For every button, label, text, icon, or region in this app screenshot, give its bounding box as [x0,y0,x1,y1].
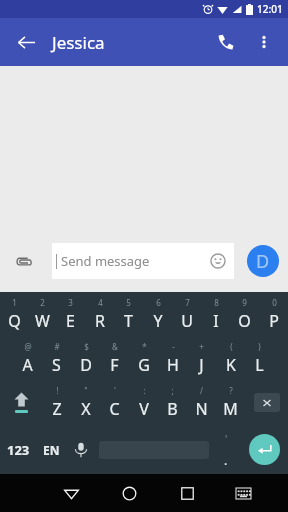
button[interactable]: Call [206,22,246,62]
staticText: * [142,341,147,352]
button[interactable]: 7 [172,292,201,337]
staticText: N [195,398,208,420]
staticText: L [255,354,264,376]
staticText: 9 [242,297,247,308]
staticText: H [167,354,179,376]
button[interactable]: Voice input [66,425,96,474]
button[interactable]: # [42,337,71,380]
staticText: 8 [214,297,219,308]
staticText: ( [230,341,233,352]
staticText: D [80,354,92,376]
button[interactable]: Home [100,474,158,512]
button[interactable]: Emoji [205,248,231,274]
staticText: : [143,385,146,396]
button[interactable]: 123 [0,425,36,474]
staticText: O [238,310,251,332]
staticText: 0 [272,297,277,308]
button[interactable]: 5 [114,292,143,337]
staticText: T [124,310,133,332]
button[interactable]: Shift [0,380,42,425]
staticText: ; [171,385,174,396]
staticText: / [200,385,203,396]
button[interactable]: * [129,337,158,380]
button[interactable]: ' [211,425,240,474]
staticText: G [138,354,150,376]
staticText: E [66,310,75,332]
button[interactable]: 0 [259,292,288,337]
staticText: . [224,452,228,468]
button[interactable]: - [158,337,187,380]
button[interactable]: Attach [10,248,36,274]
staticText: 2 [40,297,45,308]
button[interactable]: Recents [158,474,216,512]
staticText: Send message [61,252,150,270]
staticText: ' [114,385,116,396]
button[interactable]: Switch keyboard [216,474,271,512]
staticText: - [172,341,175,352]
staticText: ' [225,432,228,446]
button[interactable]: ' [100,380,129,425]
button[interactable]: Send message [52,243,234,279]
staticText: I [213,310,219,332]
button[interactable]: ; [158,380,187,425]
staticText: 7 [185,297,190,308]
button[interactable]: 8 [201,292,230,337]
button[interactable]: EN [36,425,66,474]
button[interactable]: ? [216,380,245,425]
staticText: J [199,354,204,376]
button[interactable]: Enter [240,425,288,474]
staticText: 1 [12,297,17,308]
staticText: ! [56,385,59,396]
staticText: A [22,354,33,376]
button[interactable]: Back [42,474,100,512]
button[interactable]: 2 [28,292,56,337]
button[interactable]: 9 [230,292,259,337]
button[interactable]: @ [13,337,42,380]
staticText: Jessica [52,31,105,54]
staticText: F [110,354,119,376]
button[interactable]: More options [246,24,282,60]
button[interactable]: 6 [143,292,172,337]
staticText: ? [229,385,233,396]
staticText: S [52,354,61,376]
button[interactable]: Back [6,22,46,62]
staticText: B [167,398,178,420]
button[interactable]: + [187,337,216,380]
button[interactable]: 4 [85,292,114,337]
staticText: @ [24,341,32,352]
staticText: 123 [7,441,30,459]
button[interactable]: Send [247,245,279,277]
button[interactable]: ( [216,337,245,380]
button[interactable]: / [187,380,216,425]
button[interactable]: ) [245,337,274,380]
button[interactable]: " [71,380,100,425]
staticText: 12:01 [257,2,283,16]
staticText: M [223,398,238,420]
button[interactable]: ! [42,380,71,425]
staticText: " [84,385,88,396]
staticText: W [35,310,50,332]
button[interactable]: & [100,337,129,380]
button[interactable]: $ [71,337,100,380]
button[interactable]: Space [96,425,211,474]
staticText: 3 [68,297,73,308]
staticText: ) [258,341,261,352]
button[interactable]: 3 [56,292,85,337]
staticText: P [269,310,279,332]
staticText: $ [84,341,89,352]
button[interactable]: Backspace [245,380,288,425]
staticText: 5 [126,297,131,308]
staticText: # [54,341,60,352]
staticText: + [199,341,204,352]
staticText: 6 [156,297,161,308]
staticText: X [81,398,91,420]
staticText: EN [43,442,60,458]
staticText: Q [8,310,21,332]
staticText: R [95,310,105,332]
staticText: 4 [98,297,103,308]
staticText: Z [52,398,62,420]
staticText: C [109,398,120,420]
staticText: U [181,310,193,332]
button[interactable]: : [129,380,158,425]
button[interactable]: 1 [0,292,28,337]
